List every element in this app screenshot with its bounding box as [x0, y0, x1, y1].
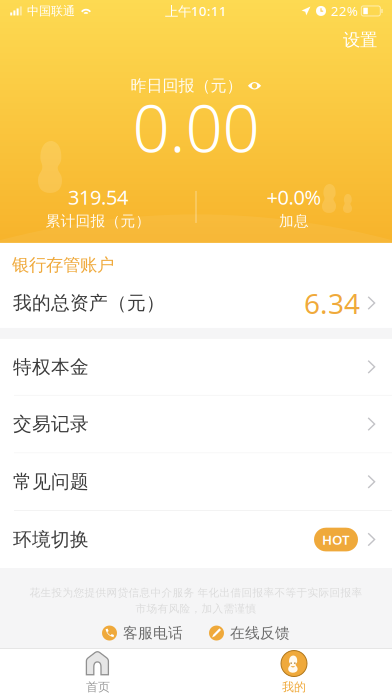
staticText: 中国联通 [27, 4, 75, 18]
staticText: 昨日回报（元） [130, 76, 242, 96]
staticText: 客服电话 [123, 624, 183, 642]
button[interactable]: 在线反馈 [209, 621, 290, 645]
staticText: 银行存管账户 [12, 254, 114, 276]
button[interactable]: 设置 [328, 22, 392, 58]
button[interactable]: 首页 [0, 649, 196, 696]
staticText: 设置 [343, 29, 377, 51]
staticText: 花生投为您提供网贷信息中介服务 年化出借回报率不等于实际回报率 [29, 586, 362, 599]
staticText: 交易记录 [13, 413, 89, 436]
staticText: 上午10:11 [165, 2, 227, 20]
staticText: 319.54 [68, 184, 128, 210]
button[interactable]: 我的 [196, 649, 392, 696]
staticText: 6.34 [304, 284, 360, 322]
staticText: 加息 [279, 212, 309, 230]
staticText: 累计回报（元） [45, 212, 150, 230]
staticText: 首页 [86, 679, 110, 694]
button[interactable]: 交易记录 [0, 396, 392, 453]
button[interactable]: 我的总资产（元） [0, 276, 392, 331]
staticText: HOT [322, 531, 350, 548]
staticText: 常见问题 [13, 470, 89, 493]
staticText: 我的 [282, 679, 306, 694]
staticText: 特权本金 [13, 355, 89, 378]
staticText: 市场有风险，加入需谨慎 [135, 602, 256, 615]
button[interactable]: 特权本金 [0, 339, 392, 395]
staticText: 0.00 [132, 84, 259, 170]
staticText: 在线反馈 [230, 624, 290, 642]
staticText: 我的总资产（元） [13, 292, 165, 314]
staticText: 环境切换 [13, 528, 89, 551]
button[interactable]: 常见问题 [0, 453, 392, 510]
staticText: +0.0% [266, 184, 321, 210]
button[interactable]: 客服电话 [102, 621, 183, 645]
button[interactable]: 环境切换 [0, 511, 392, 568]
staticText: 22% [331, 2, 358, 20]
